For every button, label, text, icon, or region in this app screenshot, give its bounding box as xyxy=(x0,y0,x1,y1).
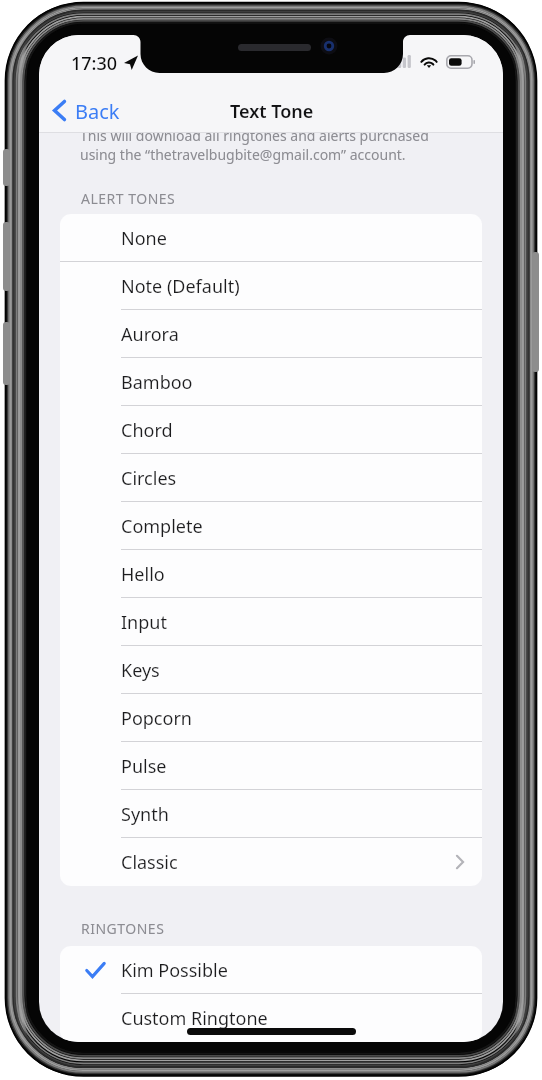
staticText: using the “thetravelbugbite@gmail.com” a… xyxy=(80,145,406,164)
staticText: None xyxy=(121,226,167,251)
button[interactable]: Synth xyxy=(60,790,482,838)
staticText: ALERT TONES xyxy=(81,189,176,208)
staticText: 17:30 xyxy=(71,51,118,76)
button[interactable]: Bamboo xyxy=(60,358,482,406)
button[interactable]: Classic xyxy=(60,838,482,886)
staticText: RINGTONES xyxy=(81,919,165,938)
staticText: Text Tone xyxy=(230,99,314,124)
button[interactable]: Popcorn xyxy=(60,694,482,742)
button[interactable]: Back xyxy=(39,83,169,133)
button[interactable]: None xyxy=(60,214,482,262)
staticText: Pulse xyxy=(121,754,167,779)
staticText: Hello xyxy=(121,562,165,587)
staticText: Kim Possible xyxy=(121,958,228,983)
button[interactable]: Custom Ringtone xyxy=(60,994,482,1042)
staticText: Synth xyxy=(121,802,169,827)
other: More xyxy=(456,855,464,869)
staticText: Classic xyxy=(121,850,178,875)
staticText: Chord xyxy=(121,418,173,443)
button[interactable]: Note (Default) xyxy=(60,262,482,310)
button[interactable]: Hello xyxy=(60,550,482,598)
button[interactable]: Kim Possible xyxy=(60,946,482,994)
staticText: Circles xyxy=(121,466,177,491)
staticText: Custom Ringtone xyxy=(121,1006,268,1031)
button[interactable]: Input xyxy=(60,598,482,646)
staticText: Note (Default) xyxy=(121,274,240,299)
staticText: Aurora xyxy=(121,322,179,347)
button[interactable]: Keys xyxy=(60,646,482,694)
button[interactable]: Chord xyxy=(60,406,482,454)
staticText: Bamboo xyxy=(121,370,193,395)
staticText: Keys xyxy=(121,658,160,683)
button[interactable]: Aurora xyxy=(60,310,482,358)
staticText: Back xyxy=(75,98,120,125)
staticText: Popcorn xyxy=(121,706,192,731)
button[interactable]: Pulse xyxy=(60,742,482,790)
button[interactable]: Circles xyxy=(60,454,482,502)
staticText: Complete xyxy=(121,514,203,539)
staticText: Input xyxy=(121,610,167,635)
staticText: This will download all ringtones and ale… xyxy=(80,126,429,145)
button[interactable]: Complete xyxy=(60,502,482,550)
